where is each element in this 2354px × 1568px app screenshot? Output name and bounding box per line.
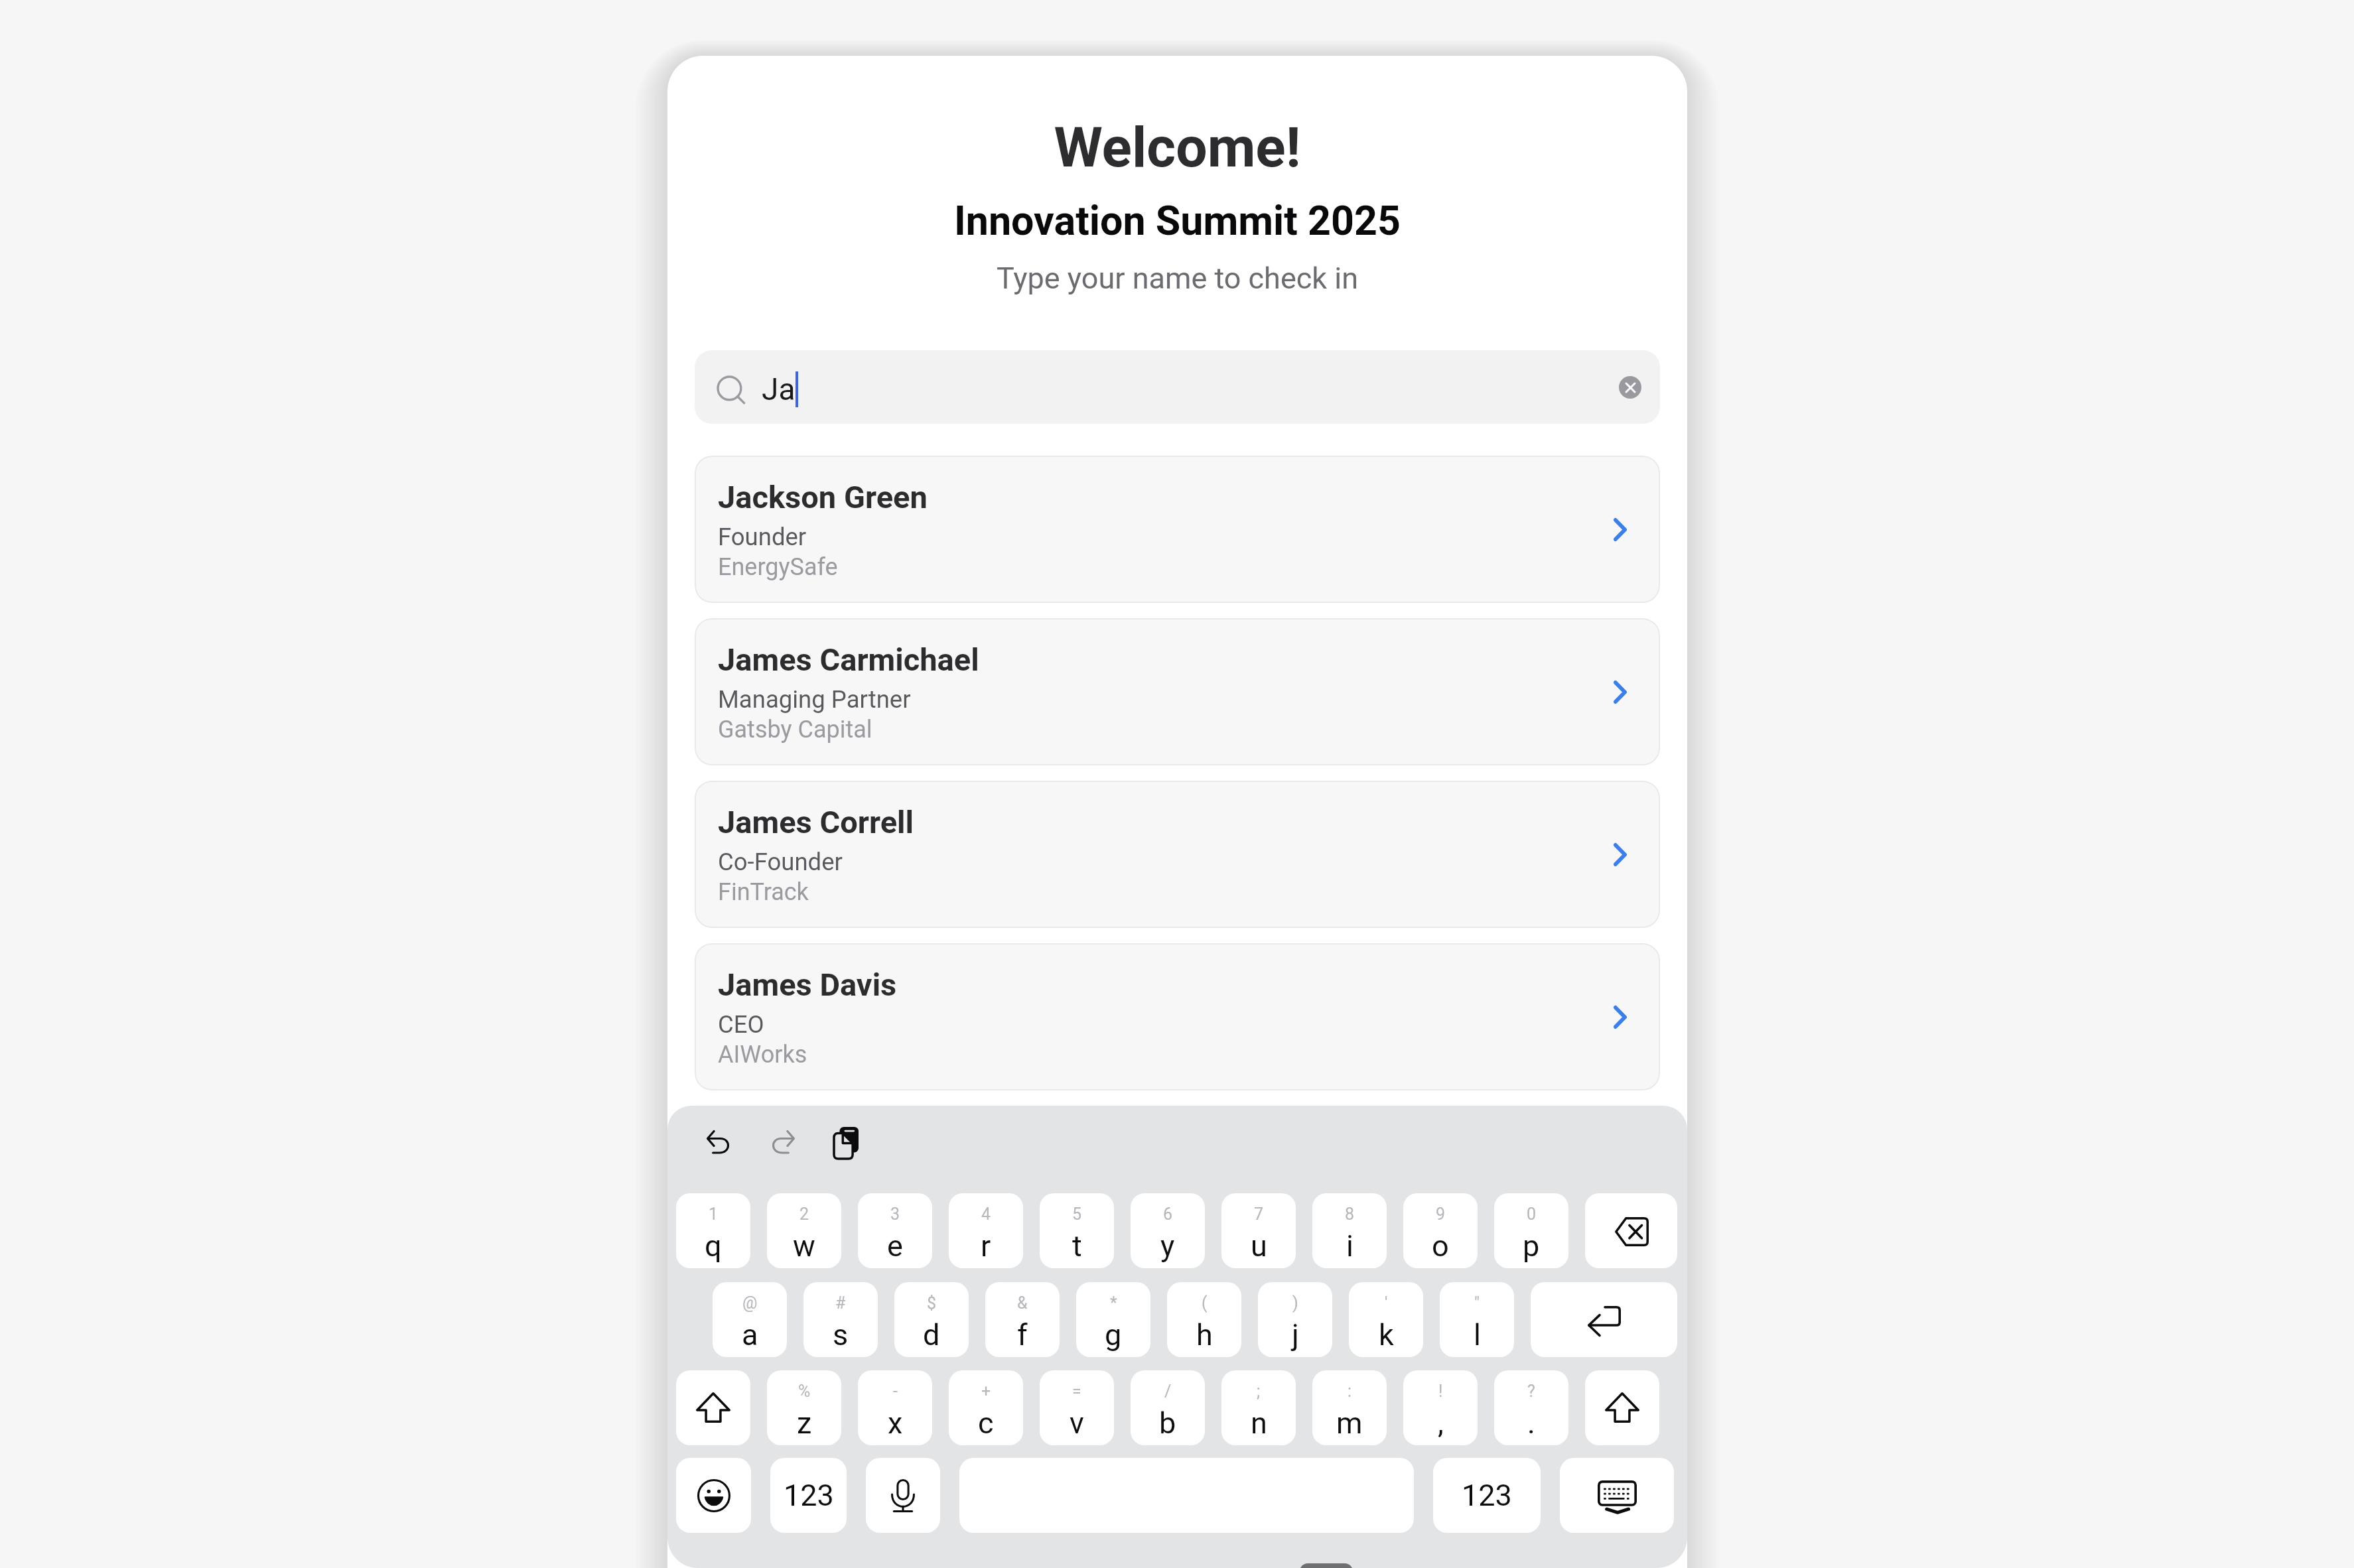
button[interactable]: 5: [1040, 1193, 1114, 1268]
button[interactable]: Backspace: [1585, 1193, 1677, 1268]
staticText: CEO: [718, 1010, 764, 1039]
staticText: c: [978, 1405, 994, 1441]
staticText: 6: [1163, 1205, 1173, 1224]
staticText: 123: [784, 1478, 834, 1513]
staticText: -: [893, 1382, 898, 1401]
staticText: .: [1527, 1405, 1535, 1441]
button[interactable]: 4: [949, 1193, 1023, 1268]
staticText: =: [1072, 1382, 1081, 1401]
button[interactable]: ;: [1221, 1370, 1296, 1445]
staticText: %: [798, 1382, 811, 1401]
button[interactable]: Clear text: [1619, 376, 1641, 399]
button[interactable]: 123: [1433, 1458, 1541, 1533]
staticText: $: [927, 1293, 937, 1313]
button[interactable]: (: [1167, 1282, 1241, 1357]
button[interactable]: 8: [1312, 1193, 1387, 1268]
staticText: AIWorks: [718, 1041, 807, 1069]
button[interactable]: 1: [676, 1193, 750, 1268]
button[interactable]: +: [949, 1370, 1023, 1445]
button[interactable]: 0: [1494, 1193, 1568, 1268]
button[interactable]: Redo: [757, 1115, 807, 1165]
staticText: Ja: [762, 371, 796, 407]
button[interactable]: 2: [767, 1193, 841, 1268]
button[interactable]: Hide keyboard: [1560, 1458, 1674, 1533]
staticText: #: [835, 1293, 846, 1313]
staticText: Gatsby Capital: [718, 716, 872, 744]
staticText: *: [1110, 1293, 1117, 1313]
button[interactable]: @: [713, 1282, 787, 1357]
button[interactable]: %: [767, 1370, 841, 1445]
staticText: z: [797, 1405, 812, 1441]
button[interactable]: Emoji: [676, 1458, 751, 1533]
button[interactable]: =: [1040, 1370, 1114, 1445]
staticText: 5: [1072, 1205, 1082, 1224]
staticText: !: [1438, 1382, 1443, 1401]
button[interactable]: &: [985, 1282, 1060, 1357]
button[interactable]: James Davis: [695, 943, 1660, 1090]
button[interactable]: 123: [770, 1458, 847, 1533]
button[interactable]: 6: [1131, 1193, 1205, 1268]
button[interactable]: /: [1131, 1370, 1205, 1445]
button[interactable]: !: [1403, 1370, 1478, 1445]
button[interactable]: -: [858, 1370, 932, 1445]
staticText: ': [1385, 1293, 1388, 1313]
staticText: m: [1336, 1405, 1363, 1441]
staticText: y: [1160, 1228, 1175, 1264]
staticText: James Carmichael: [718, 641, 979, 678]
button[interactable]: Shift: [676, 1370, 750, 1445]
button[interactable]: Copy: [821, 1118, 871, 1168]
staticText: James Correll: [718, 804, 914, 840]
staticText: r: [981, 1228, 991, 1264]
staticText: ?: [1527, 1382, 1535, 1401]
staticText: b: [1159, 1405, 1176, 1441]
staticText: 1: [709, 1205, 719, 1224]
staticText: EnergySafe: [718, 553, 838, 581]
staticText: James Davis: [718, 966, 897, 1003]
staticText: e: [887, 1228, 903, 1264]
button[interactable]: $: [894, 1282, 969, 1357]
button[interactable]: 3: [858, 1193, 932, 1268]
button[interactable]: ': [1349, 1282, 1423, 1357]
staticText: Managing Partner: [718, 685, 911, 714]
button[interactable]: #: [803, 1282, 878, 1357]
staticText: k: [1379, 1317, 1394, 1352]
button[interactable]: Enter: [1531, 1282, 1677, 1357]
staticText: 3: [890, 1205, 900, 1224]
button[interactable]: ": [1440, 1282, 1514, 1357]
staticText: g: [1105, 1317, 1122, 1352]
button[interactable]: Voice input: [866, 1458, 940, 1533]
staticText: j: [1292, 1317, 1299, 1352]
staticText: a: [742, 1317, 758, 1352]
staticText: ;: [1257, 1382, 1261, 1401]
button[interactable]: ): [1258, 1282, 1332, 1357]
staticText: d: [923, 1317, 940, 1352]
button[interactable]: Shift: [1585, 1370, 1659, 1445]
staticText: FinTrack: [718, 878, 809, 906]
staticText: @: [742, 1293, 758, 1313]
staticText: q: [705, 1228, 722, 1264]
staticText: i: [1346, 1228, 1353, 1264]
staticText: 8: [1345, 1205, 1355, 1224]
staticText: Jackson Green: [718, 479, 928, 515]
staticText: f: [1017, 1317, 1028, 1352]
button[interactable]: 7: [1221, 1193, 1296, 1268]
button[interactable]: :: [1312, 1370, 1387, 1445]
button[interactable]: ?: [1494, 1370, 1568, 1445]
staticText: s: [833, 1317, 849, 1352]
staticText: :: [1348, 1382, 1352, 1401]
button[interactable]: Ja: [695, 350, 1660, 424]
staticText: u: [1251, 1228, 1267, 1264]
staticText: Founder: [718, 523, 807, 551]
button[interactable]: Jackson Green: [695, 456, 1660, 603]
button[interactable]: *: [1076, 1282, 1150, 1357]
button[interactable]: 9: [1403, 1193, 1478, 1268]
staticText: 123: [1462, 1478, 1512, 1513]
button[interactable]: James Correll: [695, 781, 1660, 928]
staticText: 4: [981, 1205, 991, 1224]
staticText: +: [981, 1382, 991, 1401]
staticText: Co-Founder: [718, 848, 843, 876]
button[interactable]: Undo: [693, 1115, 744, 1165]
button[interactable]: James Carmichael: [695, 618, 1660, 765]
staticText: 7: [1254, 1205, 1264, 1224]
